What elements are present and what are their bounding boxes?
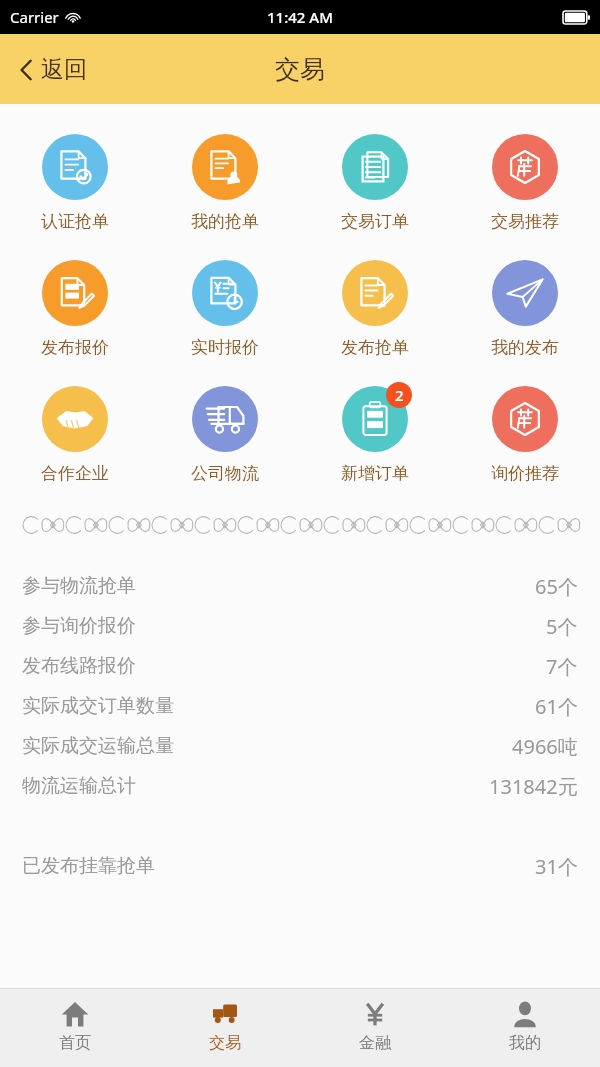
staticText: 我的发布 xyxy=(491,337,559,358)
staticText: 交易订单 xyxy=(341,211,409,232)
staticText: 认证抢单 xyxy=(41,211,109,232)
button[interactable]: 认证抢单 xyxy=(0,128,150,234)
staticText: 发布抢单 xyxy=(341,337,409,358)
staticText: 实时报价 xyxy=(191,337,259,358)
button[interactable]: 我的发布 xyxy=(450,254,600,360)
staticText: 实际成交运输总量 xyxy=(22,734,174,758)
button[interactable]: 合作企业 xyxy=(0,380,150,486)
staticText: 物流运输总计 xyxy=(22,774,136,798)
button[interactable]: 发布线路报价 xyxy=(0,646,600,686)
staticText: 4966吨 xyxy=(512,733,578,760)
button[interactable]: 已发布挂靠抢单 xyxy=(0,846,600,886)
button[interactable]: 物流运输总计 xyxy=(0,766,600,806)
button[interactable]: 交易推荐 xyxy=(450,128,600,234)
staticText: 交易 xyxy=(275,54,325,85)
staticText: 交易推荐 xyxy=(491,211,559,232)
staticText: 65个 xyxy=(535,573,578,600)
staticText: 参与物流抢单 xyxy=(22,574,136,598)
button[interactable]: 实际成交运输总量 xyxy=(0,726,600,766)
button[interactable]: 询价推荐 xyxy=(450,380,600,486)
button[interactable]: 交易订单 xyxy=(300,128,450,234)
staticText: 公司物流 xyxy=(191,463,259,484)
staticText: 61个 xyxy=(535,693,578,720)
staticText: 新增订单 xyxy=(341,463,409,484)
button[interactable]: 发布抢单 xyxy=(300,254,450,360)
staticText: 11:42 AM xyxy=(267,7,333,27)
button[interactable]: 发布报价 xyxy=(0,254,150,360)
button[interactable]: 返回 xyxy=(14,49,93,90)
button[interactable]: 金融 xyxy=(300,989,450,1067)
button[interactable]: 实际成交订单数量 xyxy=(0,686,600,726)
button[interactable]: 我的 xyxy=(450,989,600,1067)
button[interactable]: 参与物流抢单 xyxy=(0,566,600,606)
staticText: 参与询价报价 xyxy=(22,614,136,638)
staticText: 金融 xyxy=(359,1033,391,1053)
staticText: 实际成交订单数量 xyxy=(22,694,174,718)
button[interactable]: 首页 xyxy=(0,989,150,1067)
staticText: 7个 xyxy=(546,653,578,680)
staticText: 2 xyxy=(395,385,404,405)
button[interactable]: 实时报价 xyxy=(150,254,300,360)
staticText: 31个 xyxy=(535,853,578,880)
staticText: 我的抢单 xyxy=(191,211,259,232)
staticText: 5个 xyxy=(546,613,578,640)
staticText: 我的 xyxy=(509,1033,541,1053)
staticText: Carrier xyxy=(10,7,59,27)
staticText: 合作企业 xyxy=(41,463,109,484)
staticText: 询价推荐 xyxy=(491,463,559,484)
button[interactable]: 2 xyxy=(300,380,450,486)
button[interactable]: 我的抢单 xyxy=(150,128,300,234)
staticText: 交易 xyxy=(209,1033,241,1053)
staticText: 发布报价 xyxy=(41,337,109,358)
staticText: 131842元 xyxy=(489,773,578,800)
button[interactable]: 参与询价报价 xyxy=(0,606,600,646)
staticText: 返回 xyxy=(41,55,87,84)
button[interactable]: 公司物流 xyxy=(150,380,300,486)
staticText: 发布线路报价 xyxy=(22,654,136,678)
staticText: 首页 xyxy=(59,1033,91,1053)
staticText: 已发布挂靠抢单 xyxy=(22,854,155,878)
button[interactable]: 交易 xyxy=(150,989,300,1067)
